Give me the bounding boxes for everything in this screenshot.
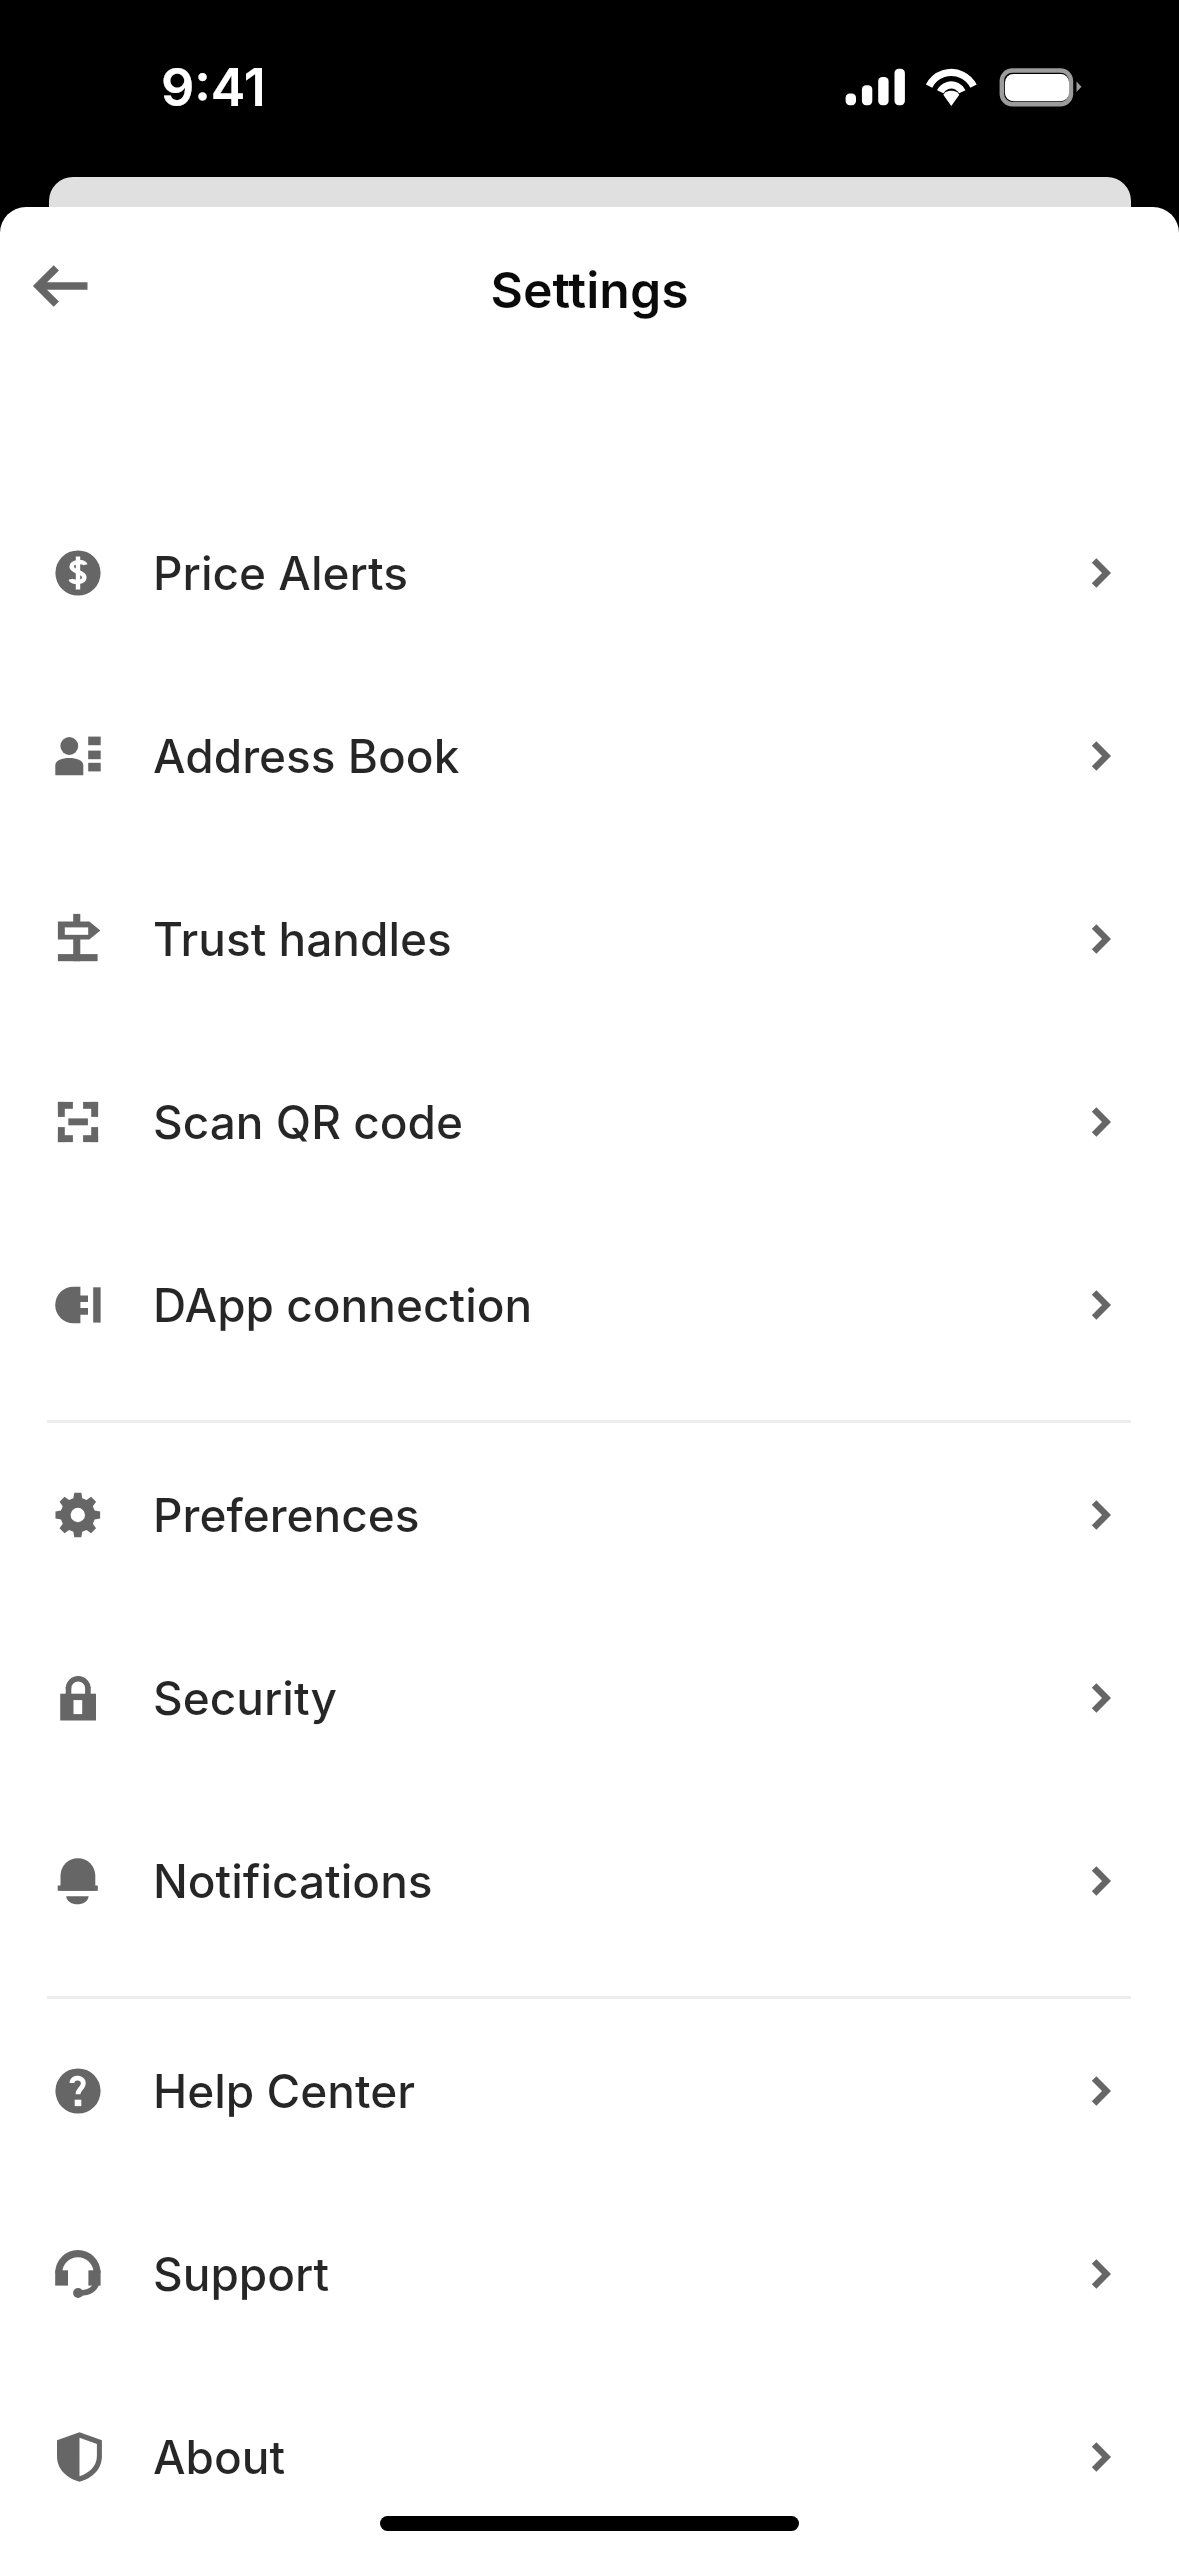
staticText: Scan QR code [153, 1094, 463, 1150]
staticText: Address Book [153, 728, 460, 784]
button[interactable]: Preferences [0, 1423, 1179, 1606]
button[interactable]: Price Alerts [0, 481, 1179, 664]
staticText: 9:41 [161, 56, 266, 119]
button[interactable]: Address Book [0, 664, 1179, 847]
staticText: Notifications [153, 1853, 433, 1909]
button[interactable]: Scan QR code [0, 1030, 1179, 1213]
button[interactable]: About [0, 2365, 1179, 2548]
staticText: About [153, 2429, 286, 2485]
staticText: Settings [0, 260, 1179, 320]
staticText: DApp connection [153, 1277, 533, 1333]
button[interactable]: Help Center [0, 1999, 1179, 2182]
button[interactable]: Security [0, 1606, 1179, 1789]
staticText: Price Alerts [153, 545, 409, 601]
button[interactable]: Trust handles [0, 847, 1179, 1030]
button[interactable]: DApp connection [0, 1213, 1179, 1396]
staticText: Preferences [153, 1487, 420, 1543]
staticText: Help Center [153, 2063, 416, 2119]
button[interactable]: Notifications [0, 1789, 1179, 1972]
button[interactable]: Back [8, 234, 112, 338]
button[interactable]: Support [0, 2182, 1179, 2365]
staticText: Support [153, 2246, 330, 2302]
staticText: Trust handles [153, 911, 452, 967]
staticText: Security [153, 1670, 337, 1726]
